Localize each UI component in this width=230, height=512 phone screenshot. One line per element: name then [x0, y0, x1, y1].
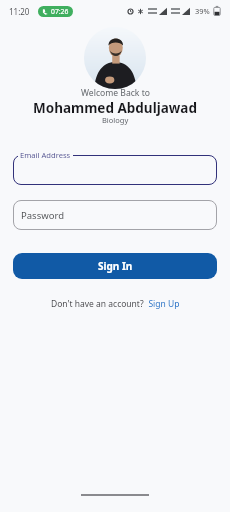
button[interactable]	[13, 155, 217, 185]
staticText: Password	[21, 209, 64, 222]
staticText: Mohammed Abduljawad	[33, 99, 197, 117]
button[interactable]: Password	[13, 200, 217, 230]
staticText: Welcome Back to	[81, 87, 150, 99]
staticText: Sign Up	[144, 298, 180, 310]
staticText: 11:20	[9, 6, 30, 17]
staticText: 07:26	[51, 7, 69, 16]
button[interactable]: Don't have an account?	[51, 298, 180, 310]
staticText: Sign In	[98, 259, 133, 273]
button[interactable]: Sign In	[13, 253, 217, 279]
staticText: Don't have an account?	[51, 298, 144, 310]
staticText: Email Address	[20, 150, 71, 160]
staticText: 39%	[195, 6, 210, 16]
staticText: Biology	[102, 115, 129, 125]
